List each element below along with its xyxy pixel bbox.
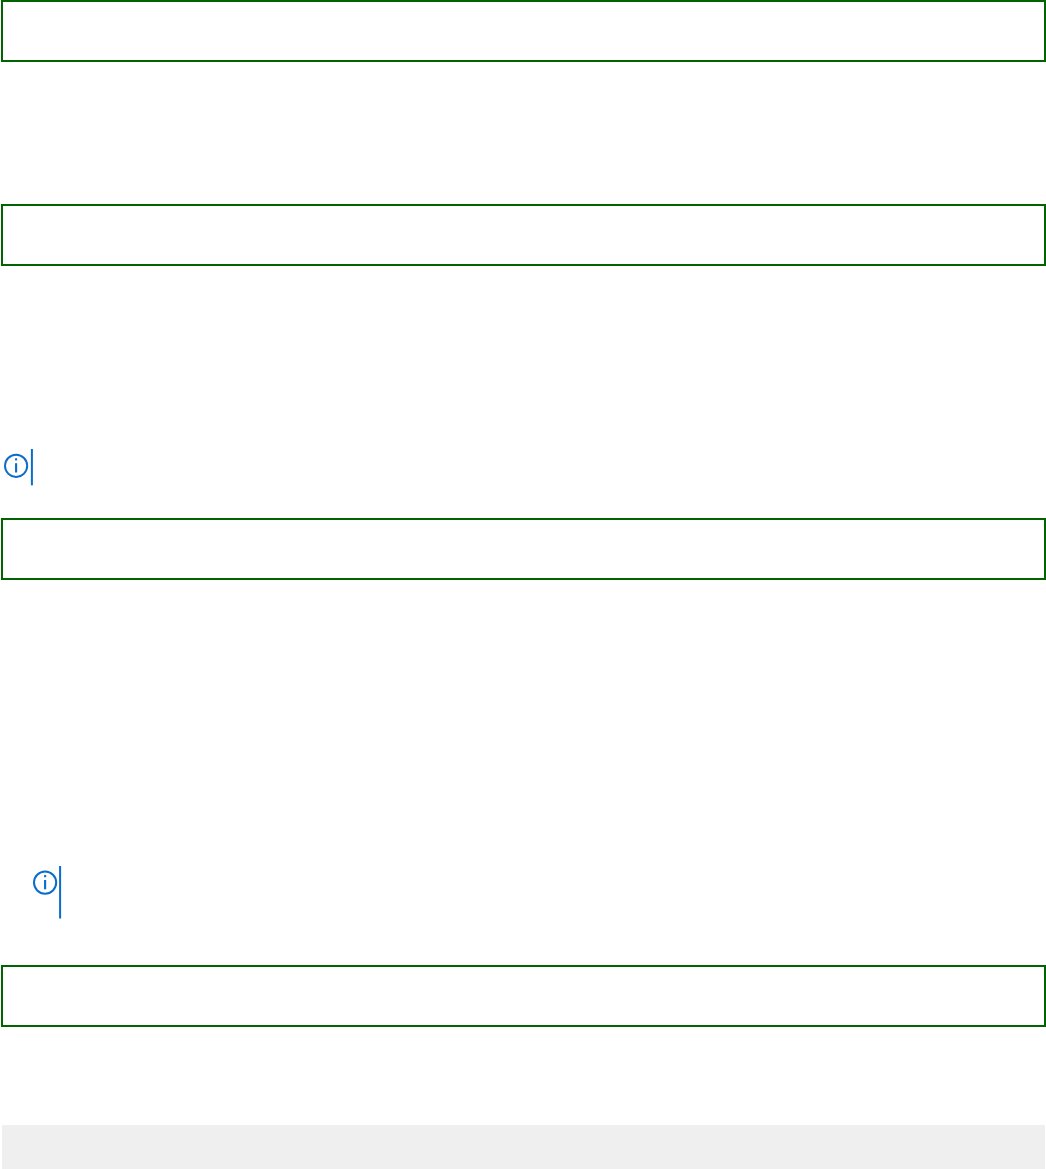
button[interactable]: More information [2,447,35,487]
button[interactable]: Text field 2 [1,204,1046,266]
button[interactable]: More information [31,864,63,921]
button[interactable]: Text field 4 [1,965,1046,1027]
button[interactable]: Text field 3 [1,518,1046,580]
button[interactable]: Text field 1 [1,0,1046,62]
